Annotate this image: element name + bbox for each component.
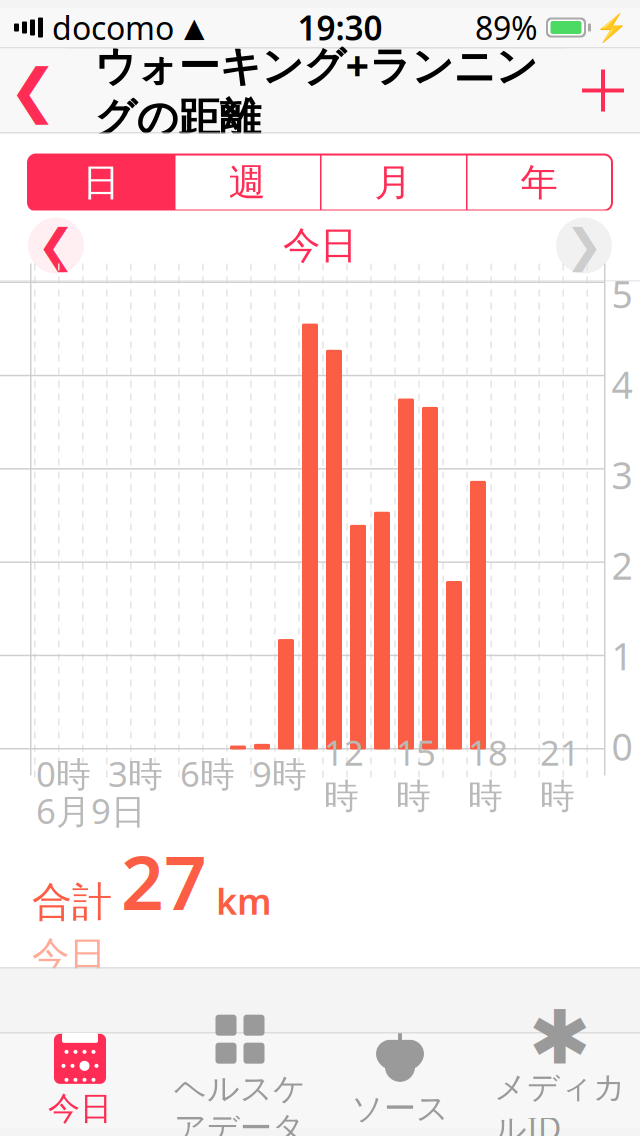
button[interactable]: ▼: [320, 1033, 480, 1128]
staticText: 2: [611, 540, 632, 590]
staticText: ▲: [184, 12, 205, 43]
staticText: ❮: [8, 57, 57, 124]
staticText: ❯: [565, 220, 603, 271]
staticText: 今日: [48, 1089, 112, 1128]
staticText: 日: [82, 160, 119, 205]
button[interactable]: 年: [466, 154, 612, 210]
staticText: 9時: [252, 750, 307, 796]
staticText: 今日: [32, 933, 106, 979]
staticText: メディカルID: [494, 1068, 626, 1136]
button[interactable]: ヘルスケアデータ: [160, 1033, 320, 1128]
staticText: 15時: [396, 729, 436, 818]
staticText: ウォーキング+ランニングの距離: [94, 38, 537, 143]
button[interactable]: 今日: [0, 1033, 160, 1128]
staticText: ✱: [528, 995, 591, 1080]
button[interactable]: ✱: [480, 1033, 640, 1128]
staticText: 3時: [108, 750, 163, 796]
button[interactable]: 月: [320, 154, 466, 210]
staticText: 1: [611, 631, 632, 680]
staticText: 21時: [540, 729, 580, 818]
staticText: ソース: [351, 1089, 449, 1128]
button[interactable]: 戻る: [0, 48, 66, 132]
staticText: 週: [228, 160, 265, 205]
staticText: docomo: [52, 6, 174, 49]
staticText: 12時: [324, 729, 364, 818]
staticText: 0時: [36, 750, 91, 796]
staticText: 今日: [283, 223, 357, 268]
button[interactable]: 前の日: [0, 210, 112, 280]
staticText: 5: [611, 269, 632, 319]
staticText: 月: [374, 160, 411, 205]
button[interactable]: 週: [174, 154, 320, 210]
staticText: 19:30: [297, 5, 382, 50]
button[interactable]: 次の日: [528, 210, 640, 280]
button[interactable]: 日: [28, 154, 174, 210]
staticText: 6月9日: [36, 787, 146, 833]
staticText: ⚡: [595, 12, 628, 43]
staticText: 89%: [475, 6, 538, 49]
staticText: 4: [611, 359, 632, 409]
staticText: 3: [611, 450, 632, 500]
staticText: 年: [520, 160, 557, 205]
staticText: km: [216, 877, 272, 925]
staticText: ▼: [391, 1057, 409, 1084]
staticText: 6時: [180, 750, 235, 796]
button[interactable]: データを追加: [566, 48, 640, 132]
staticText: 合計: [32, 877, 112, 927]
staticText: ヘルスケアデータ: [174, 1069, 306, 1136]
staticText: ❮: [37, 220, 75, 271]
staticText: 0: [611, 721, 632, 771]
staticText: 27: [121, 831, 207, 931]
staticText: 18時: [468, 729, 508, 818]
